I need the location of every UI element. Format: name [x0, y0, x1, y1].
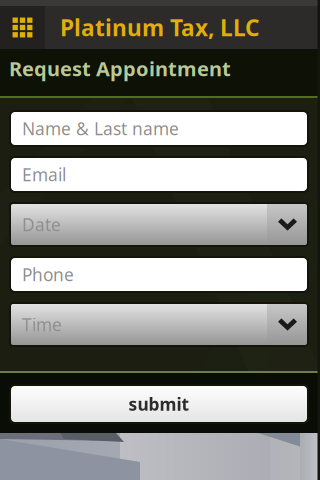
staticText: Date	[22, 213, 61, 236]
button[interactable]: Phone	[10, 257, 308, 292]
staticText: Request Appointment	[9, 55, 231, 82]
staticText: Phone	[22, 263, 74, 286]
button[interactable]: submit	[10, 385, 308, 423]
button[interactable]: Date	[10, 203, 308, 246]
button[interactable]: Time	[10, 303, 308, 346]
staticText: submit	[128, 392, 189, 415]
button[interactable]: Name & Last name	[10, 111, 308, 146]
staticText: Platinum Tax, LLC	[60, 12, 260, 42]
staticText: Email	[22, 163, 66, 186]
button[interactable]: Email	[10, 157, 308, 192]
staticText: Name & Last name	[22, 117, 179, 140]
button[interactable]: Menu	[0, 6, 45, 49]
staticText: Time	[22, 313, 62, 336]
